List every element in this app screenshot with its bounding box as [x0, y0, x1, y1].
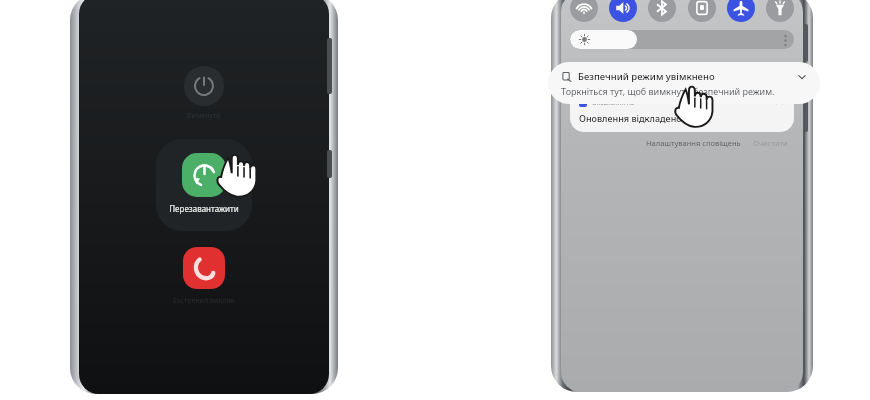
- staticText: Перезавантажити: [169, 203, 239, 214]
- button[interactable]: Налаштування сповіщень: [646, 138, 741, 148]
- button[interactable]: Airplane mode: [727, 0, 755, 22]
- staticText: Оновлення відкладено.: [579, 112, 685, 124]
- button[interactable]: Оновлення ПЗ: [570, 91, 794, 132]
- button[interactable]: Wi-Fi: [570, 0, 598, 22]
- staticText: Екстрений виклик: [173, 296, 235, 306]
- staticText: Безпечний режим увімкнено: [578, 70, 715, 83]
- staticText: Вимкнути: [187, 111, 221, 121]
- button[interactable]: Bluetooth: [648, 0, 676, 22]
- other: Tap here: [673, 85, 715, 129]
- button[interactable]: Screen lock: [688, 0, 716, 22]
- button[interactable]: [570, 30, 794, 49]
- staticText: Оновлення ПЗ: [592, 99, 635, 107]
- other: Tap restart: [215, 153, 259, 199]
- button[interactable]: Очистити: [753, 138, 788, 148]
- button[interactable]: Flashlight: [766, 0, 794, 22]
- button[interactable]: Sound: [609, 0, 637, 22]
- button[interactable]: Безпечний режим увімкнено: [548, 62, 820, 104]
- staticText: Торкніться тут, щоб вимкнути безпечний р…: [561, 85, 775, 97]
- button[interactable]: Emergency call: [169, 243, 239, 310]
- button[interactable]: Перезавантажити: [156, 139, 252, 231]
- button[interactable]: Power off: [180, 62, 228, 125]
